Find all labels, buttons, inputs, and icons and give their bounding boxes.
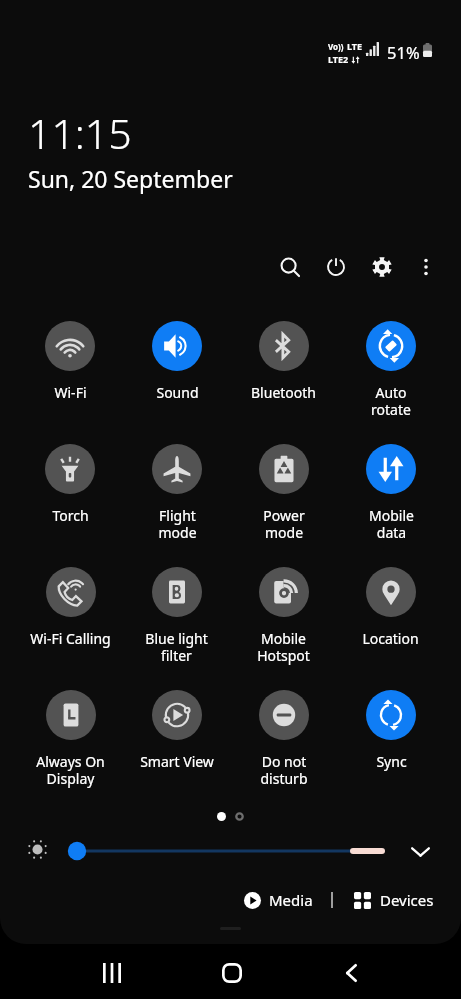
button[interactable]: More options <box>408 249 444 285</box>
button[interactable]: Sound <box>123 321 230 444</box>
button[interactable]: Auto rotate <box>337 321 444 444</box>
button[interactable]: Media <box>244 884 313 916</box>
button[interactable]: Power mode <box>230 444 337 567</box>
button[interactable]: Search <box>272 249 308 285</box>
button[interactable]: Wi-Fi <box>17 321 123 444</box>
staticText: Sound <box>156 383 199 402</box>
button[interactable]: Mobile Hotspot <box>230 567 337 690</box>
staticText: Always On Display <box>36 752 105 788</box>
button[interactable]: Devices <box>354 884 434 916</box>
button[interactable]: Bluetooth <box>230 321 337 444</box>
staticText: 11:15 <box>28 105 132 161</box>
staticText: Blue light filter <box>145 629 208 665</box>
staticText: Power mode <box>263 506 305 542</box>
staticText: Location <box>362 629 419 648</box>
staticText: 51% <box>387 41 420 63</box>
staticText: Bluetooth <box>251 383 316 402</box>
button[interactable]: Sync <box>337 690 444 813</box>
button[interactable]: Do not disturb <box>230 690 337 813</box>
button[interactable]: Flight mode <box>123 444 230 567</box>
staticText: Flight mode <box>158 506 197 542</box>
button[interactable]: Blue light filter <box>123 567 230 690</box>
staticText: Wi-Fi Calling <box>30 629 111 648</box>
staticText: LTE <box>347 40 363 52</box>
button[interactable]: Back <box>327 948 376 997</box>
button[interactable]: Power off <box>318 249 354 285</box>
staticText: Auto rotate <box>371 383 411 419</box>
button[interactable]: Wi-Fi Calling <box>17 567 123 690</box>
button[interactable]: Always On Display <box>17 690 123 813</box>
button[interactable]: Smart View <box>123 690 230 813</box>
staticText: Mobile data <box>369 506 414 542</box>
staticText: Media <box>269 890 313 910</box>
button[interactable]: Settings <box>364 249 400 285</box>
button[interactable]: Expand brightness <box>407 838 433 864</box>
staticText: Devices <box>380 890 434 910</box>
button[interactable]: Recents <box>87 948 136 997</box>
staticText: Torch <box>52 506 89 525</box>
staticText: Do not disturb <box>260 752 308 788</box>
button[interactable]: Torch <box>17 444 123 567</box>
staticText: Wi-Fi <box>54 383 87 402</box>
staticText: Sun, 20 September <box>28 163 233 194</box>
button[interactable]: Location <box>337 567 444 690</box>
button[interactable]: Brightness <box>26 838 48 860</box>
staticText: Sync <box>376 752 407 771</box>
button[interactable]: Home <box>207 948 256 997</box>
staticText: LTE2 <box>328 53 349 65</box>
staticText: Mobile Hotspot <box>257 629 310 665</box>
staticText: Smart View <box>140 752 214 771</box>
staticText: Vo)) <box>328 41 344 52</box>
button[interactable]: Mobile data <box>337 444 444 567</box>
